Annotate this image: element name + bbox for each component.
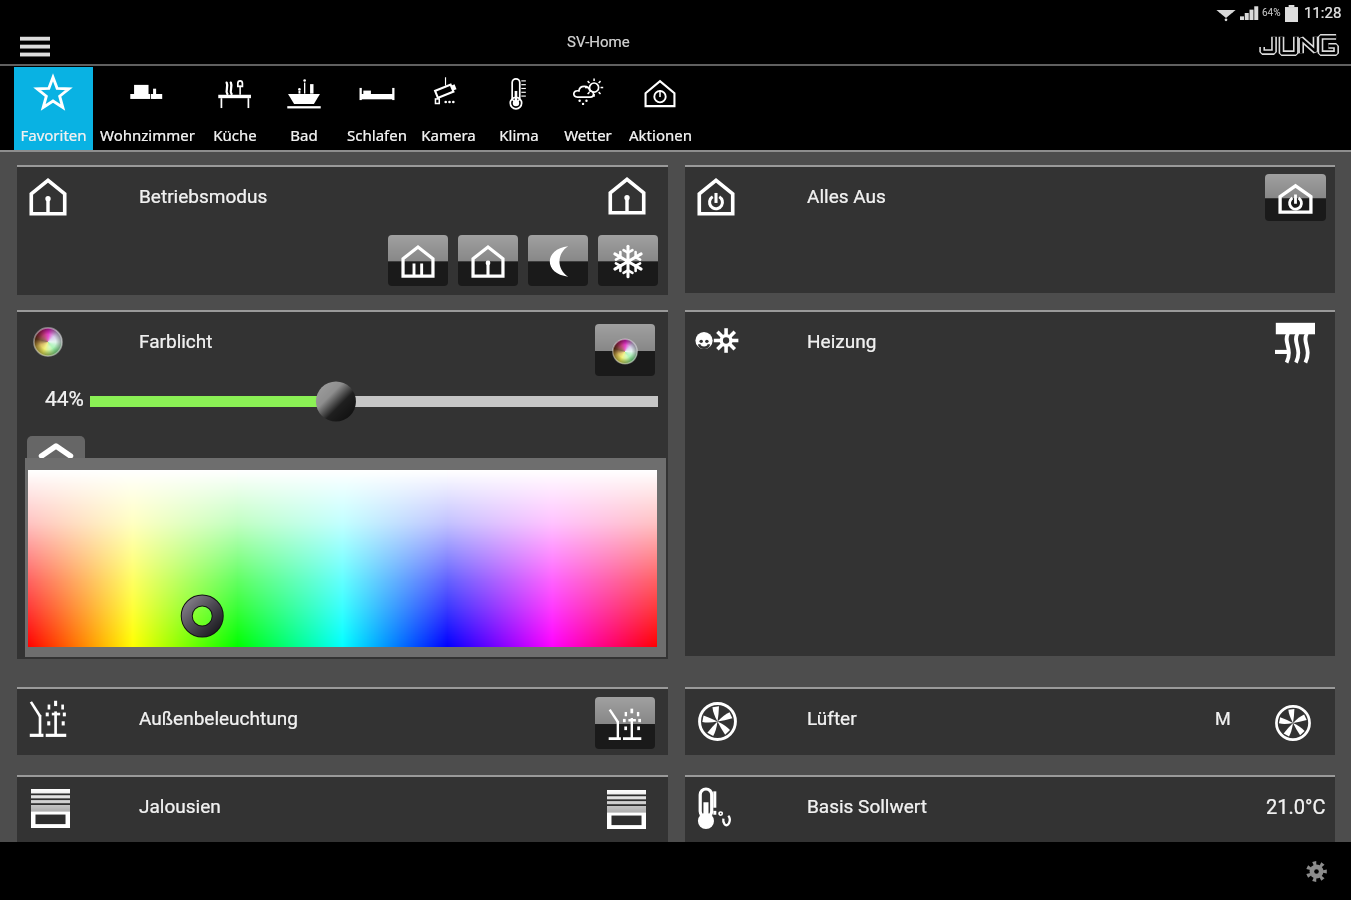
staticText: Klima <box>499 125 539 145</box>
button[interactable]: Außenbeleuchtung <box>17 689 668 755</box>
button[interactable]: Jalousien <box>17 777 668 842</box>
button[interactable]: Aktionen <box>612 67 708 150</box>
staticText: Schlafen <box>347 125 407 145</box>
staticText: Kamera <box>421 125 476 145</box>
staticText: Favoriten <box>20 125 87 145</box>
button[interactable]: Collapse <box>27 436 85 466</box>
button[interactable]: Wetter <box>540 67 636 150</box>
button[interactable]: Menu <box>18 29 52 63</box>
staticText: SV-Home <box>567 33 630 51</box>
button[interactable]: Kamera <box>400 67 496 150</box>
button[interactable]: Settings <box>1299 854 1333 888</box>
button[interactable]: Schlafen <box>329 67 425 150</box>
button[interactable] <box>25 458 666 657</box>
button[interactable]: Bad <box>256 67 352 150</box>
staticText: Alles Aus <box>807 185 886 207</box>
button[interactable] <box>14 67 93 150</box>
staticText: Außenbeleuchtung <box>139 707 298 729</box>
staticText: M <box>1215 708 1231 729</box>
staticText: Lüfter <box>807 707 857 729</box>
button[interactable]: Betriebsmodus <box>17 167 668 295</box>
staticText: Heizung <box>807 330 877 352</box>
button[interactable]: Wohnzimmer <box>99 67 195 150</box>
button[interactable]: Lüfter <box>685 689 1335 755</box>
button[interactable]: Standby mode <box>458 235 518 286</box>
button[interactable]: Basis Sollwert <box>685 777 1335 842</box>
button[interactable]: Colour picker <box>595 324 655 376</box>
button[interactable]: Heizung <box>685 312 1335 656</box>
staticText: 64% <box>1262 7 1281 19</box>
staticText: Bad <box>290 125 318 145</box>
button[interactable]: Night mode <box>528 235 588 286</box>
staticText: 44% <box>45 387 84 412</box>
staticText: Basis Sollwert <box>807 795 927 817</box>
staticText: 21.0°C <box>1266 795 1326 818</box>
staticText: Küche <box>213 125 257 145</box>
button[interactable]: Favoriten <box>5 67 101 150</box>
staticText: Aktionen <box>629 125 692 145</box>
button[interactable]: Frost mode <box>598 235 658 286</box>
staticText: Betriebsmodus <box>139 185 268 207</box>
button[interactable]: Küche <box>187 67 283 150</box>
button[interactable]: Alles Aus <box>685 167 1335 293</box>
staticText: Farblicht <box>139 330 213 352</box>
button[interactable]: Farblicht <box>17 312 668 378</box>
button[interactable]: Klima <box>471 67 567 150</box>
button[interactable]: Comfort mode <box>388 235 448 286</box>
staticText: Jalousien <box>139 795 221 817</box>
staticText: 11:28 <box>1304 4 1342 22</box>
button[interactable]: All off <box>1265 174 1326 221</box>
staticText: Wohnzimmer <box>100 125 195 145</box>
button[interactable]: Außenbeleuchtung <box>595 697 655 749</box>
staticText: Wetter <box>564 125 612 145</box>
